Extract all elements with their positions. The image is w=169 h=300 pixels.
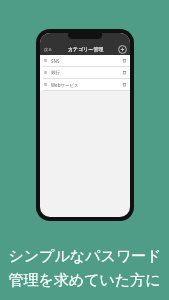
button[interactable]: 戻る <box>43 46 54 53</box>
button[interactable]: SNS <box>40 55 130 66</box>
staticText: シンプルなパスワード <box>8 247 162 266</box>
staticText: SNS <box>51 58 60 64</box>
staticText: 管理を求めていた方に <box>8 271 161 290</box>
staticText: カテゴリー管理 <box>68 46 104 52</box>
other: Delete 銀行 <box>122 70 127 75</box>
staticText: 銀行 <box>51 70 60 76</box>
button[interactable]: 銀行 <box>40 67 130 78</box>
other: Delete SNS <box>122 58 127 63</box>
button[interactable]: Webサービス <box>40 79 130 90</box>
other: Delete Webサービス <box>122 82 127 87</box>
button[interactable]: Add category <box>118 45 127 54</box>
staticText: Webサービス <box>51 82 79 88</box>
staticText: 戻る <box>44 47 53 52</box>
